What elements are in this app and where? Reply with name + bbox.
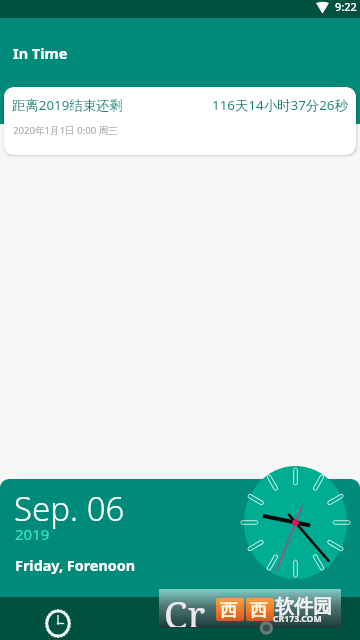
staticText: 软件园 <box>275 595 332 619</box>
staticText: In Time <box>13 43 68 63</box>
staticText: 116天14小时37分26秒 <box>212 96 348 114</box>
staticText: 距离2019结束还剩 <box>12 96 123 114</box>
staticText: 9:22 <box>335 0 357 14</box>
button[interactable]: 距离2019结束还剩 <box>4 87 356 155</box>
button[interactable]: Clock <box>34 597 82 640</box>
staticText: Friday, Forenoon <box>15 556 136 576</box>
staticText: 2020年1月1日 0:00 周三 <box>13 124 118 137</box>
staticText: 西 <box>220 600 237 621</box>
staticText: 西 <box>250 600 267 621</box>
staticText: CR173.COM <box>273 613 322 625</box>
staticText: Sep. 06 <box>14 486 125 531</box>
staticText: 2019 <box>15 524 50 544</box>
staticText: Cr <box>164 588 206 627</box>
button[interactable]: Sep. 06 <box>0 479 360 597</box>
